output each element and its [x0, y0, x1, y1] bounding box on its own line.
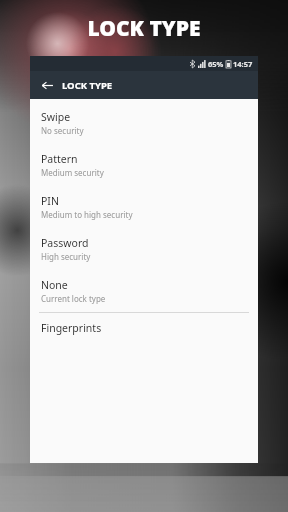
button[interactable]: Password	[30, 228, 258, 270]
staticText: None	[41, 278, 68, 292]
button[interactable]: Pattern	[30, 144, 258, 186]
staticText: LOCK TYPE	[87, 14, 201, 43]
staticText: LOCK TYPE	[62, 79, 113, 92]
staticText: Fingerprints	[41, 321, 102, 335]
button[interactable]: Fingerprints	[30, 313, 258, 343]
staticText: 65%	[208, 59, 224, 69]
staticText: PIN	[41, 194, 59, 208]
staticText: Pattern	[41, 152, 78, 166]
staticText: No security	[41, 125, 84, 136]
staticText: Medium security	[41, 167, 104, 178]
staticText: 14:57	[233, 59, 253, 69]
staticText: Medium to high security	[41, 209, 133, 220]
button[interactable]: Swipe	[30, 102, 258, 144]
staticText: Password	[41, 236, 89, 250]
button[interactable]: Back	[36, 74, 58, 96]
staticText: Swipe	[41, 110, 71, 124]
staticText: Current lock type	[41, 293, 106, 304]
button[interactable]: PIN	[30, 186, 258, 228]
button[interactable]: None	[30, 270, 258, 312]
staticText: High security	[41, 251, 91, 262]
